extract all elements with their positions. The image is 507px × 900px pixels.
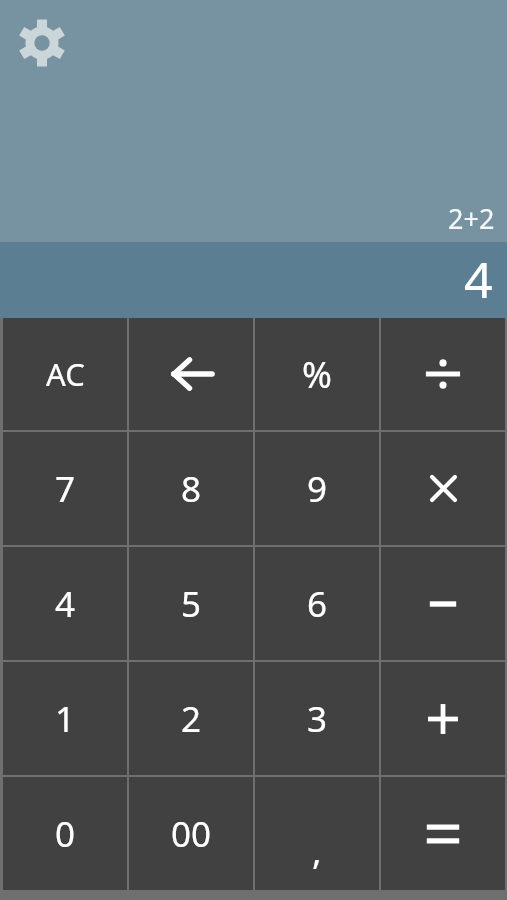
button[interactable]: 8 xyxy=(129,432,253,545)
button[interactable]: 9 xyxy=(255,432,379,545)
staticText: AC xyxy=(46,353,85,395)
staticText: 2+2 xyxy=(448,200,495,237)
button[interactable]: Decimal separator xyxy=(255,777,379,890)
button[interactable]: 1 xyxy=(3,662,127,775)
staticText: 6 xyxy=(307,580,328,628)
staticText: 8 xyxy=(181,465,202,513)
staticText: 9 xyxy=(307,465,328,513)
staticText: 4 xyxy=(55,580,76,628)
staticText: 4 xyxy=(464,245,493,313)
button[interactable]: 4 xyxy=(3,547,127,660)
button[interactable]: 00 xyxy=(129,777,253,890)
staticText: 1 xyxy=(55,695,76,743)
button[interactable]: AC xyxy=(3,318,127,430)
staticText: 3 xyxy=(307,695,328,743)
button[interactable]: 5 xyxy=(129,547,253,660)
staticText: % xyxy=(302,350,332,399)
staticText: , xyxy=(312,826,322,875)
staticText: 00 xyxy=(171,810,212,858)
button[interactable]: % xyxy=(255,318,379,430)
staticText: 7 xyxy=(55,465,76,513)
button[interactable]: Minus xyxy=(381,547,505,660)
button[interactable]: Backspace xyxy=(129,318,253,430)
button[interactable]: 7 xyxy=(3,432,127,545)
button[interactable]: Divide xyxy=(381,318,505,430)
staticText: 2 xyxy=(181,695,202,743)
button[interactable]: Plus xyxy=(381,662,505,775)
button[interactable]: 0 xyxy=(3,777,127,890)
button[interactable]: Multiply xyxy=(381,432,505,545)
button[interactable]: Equals xyxy=(381,777,505,890)
button[interactable]: Settings xyxy=(14,15,70,71)
button[interactable]: 3 xyxy=(255,662,379,775)
button[interactable]: 2 xyxy=(129,662,253,775)
button[interactable]: 6 xyxy=(255,547,379,660)
staticText: 0 xyxy=(55,810,76,858)
staticText: 5 xyxy=(181,580,202,628)
